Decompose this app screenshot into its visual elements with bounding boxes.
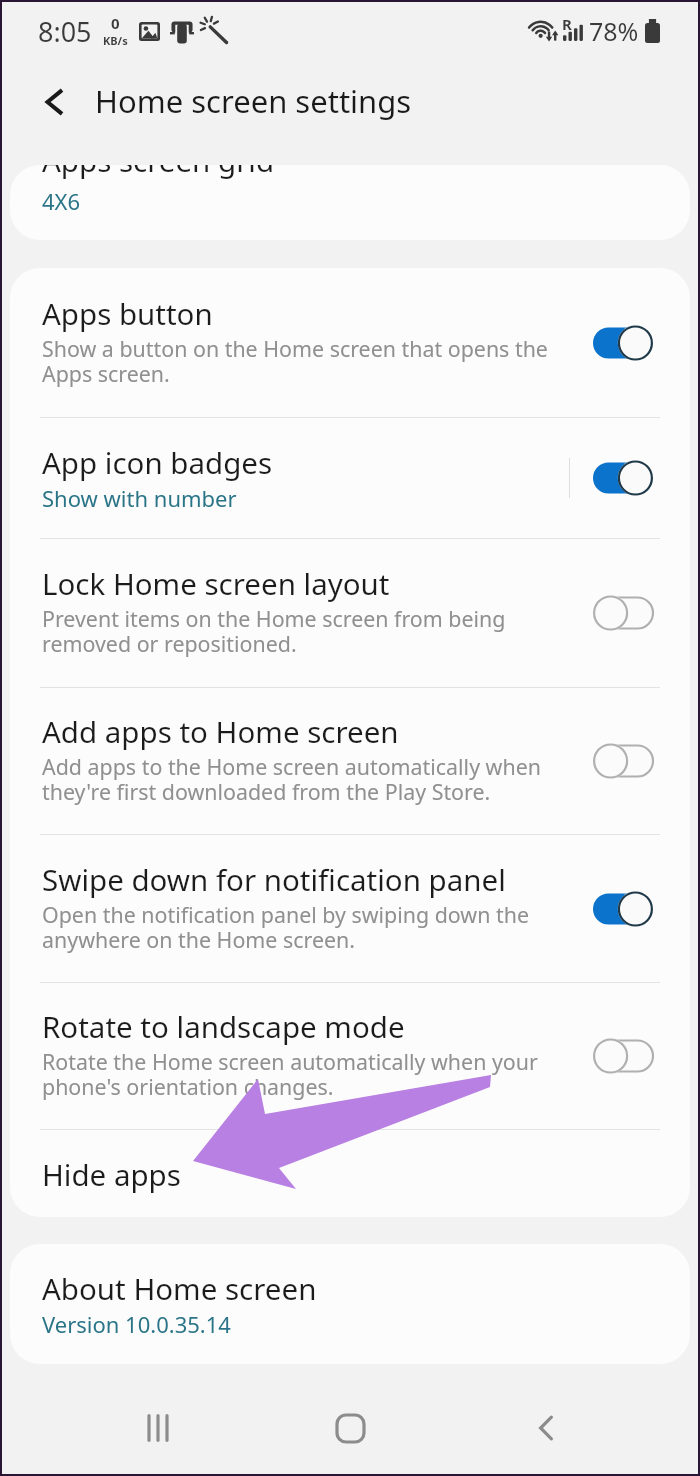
staticText: Add apps to Home screen [42, 711, 399, 751]
button[interactable]: Switch off [592, 1036, 654, 1076]
staticText: Show a button on the Home screen that op… [42, 334, 548, 389]
button[interactable]: Switch on [592, 323, 654, 363]
staticText: Apps screen grid [42, 165, 275, 180]
button[interactable]: Switch on [592, 889, 654, 929]
button[interactable]: App icon badges [10, 418, 690, 538]
button[interactable]: About Home screen [10, 1244, 690, 1364]
staticText: Apps button [42, 293, 213, 333]
staticText: Swipe down for notification panel [42, 859, 506, 899]
staticText: R [562, 14, 572, 34]
button[interactable]: Back [33, 80, 77, 124]
button[interactable]: Back [516, 1398, 576, 1458]
staticText: 4X6 [42, 186, 81, 215]
button[interactable]: Swipe down for notification panel [10, 835, 690, 982]
staticText: KB/s [103, 33, 128, 48]
staticText: Rotate to landscape mode [42, 1006, 405, 1046]
button[interactable]: Apps screen grid [10, 165, 690, 240]
staticText: Rotate the Home screen automatically whe… [42, 1047, 538, 1102]
staticText: Open the notification panel by swiping d… [42, 900, 529, 955]
staticText: Add apps to the Home screen automaticall… [42, 752, 541, 807]
staticText: Hide apps [42, 1154, 181, 1194]
staticText: About Home screen [42, 1268, 317, 1308]
button[interactable]: Switch on [592, 458, 654, 498]
button[interactable]: Hide apps [10, 1130, 690, 1217]
staticText: App icon badges [42, 442, 273, 482]
button[interactable]: Lock Home screen layout [10, 539, 690, 687]
staticText: Home screen settings [95, 80, 412, 122]
button[interactable]: Switch off [592, 593, 654, 633]
staticText: Show with number [42, 483, 237, 513]
staticText: 8:05 [38, 13, 92, 50]
button[interactable]: Rotate to landscape mode [10, 983, 690, 1129]
staticText: 78% [589, 14, 639, 48]
staticText: Prevent items on the Home screen from be… [42, 604, 506, 659]
button[interactable]: Home [320, 1398, 380, 1458]
button[interactable]: Add apps to Home screen [10, 688, 690, 834]
staticText: Version 10.0.35.14 [42, 1309, 231, 1339]
button[interactable]: Recent apps [128, 1398, 188, 1458]
button[interactable]: Apps button [10, 268, 690, 417]
staticText: 0 [111, 13, 120, 33]
staticText: Lock Home screen layout [42, 563, 390, 603]
button[interactable]: Switch off [592, 741, 654, 781]
